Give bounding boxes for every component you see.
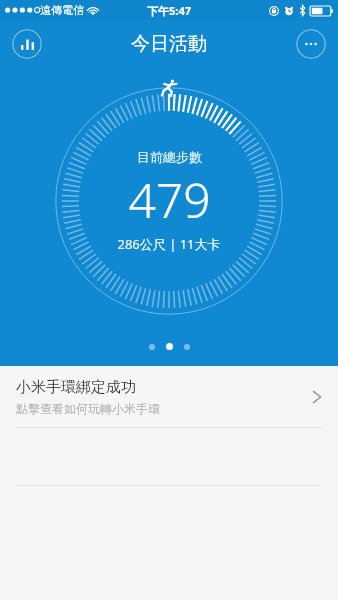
button[interactable]: More options xyxy=(296,29,326,59)
staticText: 479 xyxy=(128,167,211,232)
staticText: 遠傳電信 xyxy=(40,3,84,17)
staticText: 今日活動 xyxy=(131,32,207,56)
button[interactable]: 小米手環綁定成功 xyxy=(0,366,338,427)
staticText: 286公尺 | 11大卡 xyxy=(117,235,221,253)
staticText: 目前總步數 xyxy=(137,149,202,165)
staticText: 點擊查看如何玩轉小米手環 xyxy=(16,401,160,416)
button[interactable]: Statistics xyxy=(12,29,42,59)
staticText: 小米手環綁定成功 xyxy=(16,378,136,397)
staticText: 下午5:47 xyxy=(147,3,191,18)
